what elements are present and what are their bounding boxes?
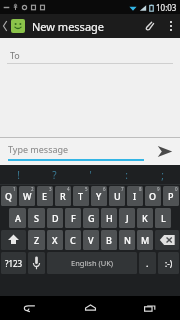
button[interactable]: U — [109, 186, 125, 206]
button[interactable]: ?123 — [1, 252, 26, 274]
staticText: M — [141, 234, 150, 246]
button[interactable]: C — [65, 230, 81, 250]
button[interactable]: Voice input — [28, 252, 45, 274]
button[interactable]: Home — [60, 296, 120, 320]
button[interactable]: K — [137, 208, 153, 228]
button[interactable]: . — [139, 252, 156, 274]
button[interactable]: Type message — [8, 143, 144, 161]
staticText: V — [88, 234, 94, 246]
button[interactable]: S — [28, 208, 45, 228]
button[interactable]: R — [55, 186, 71, 206]
button[interactable]: Attach — [136, 14, 162, 38]
staticText: 1 — [13, 186, 16, 192]
staticText: N — [124, 234, 131, 246]
staticText: ! — [17, 168, 20, 182]
button[interactable]: B — [101, 230, 117, 250]
staticText: Q — [5, 190, 13, 202]
staticText: R — [60, 190, 66, 202]
staticText: B — [106, 234, 112, 246]
staticText: K — [142, 212, 148, 224]
staticText: I — [133, 190, 137, 202]
button[interactable]: P — [163, 186, 179, 206]
staticText: W — [23, 190, 32, 202]
staticText: 4 — [67, 186, 70, 192]
staticText: ? — [52, 168, 57, 182]
staticText: D — [52, 212, 59, 224]
staticText: 5 — [85, 186, 88, 192]
staticText: 0 — [175, 186, 178, 192]
button[interactable]: Send — [150, 138, 180, 165]
button[interactable]: G — [83, 208, 99, 228]
button[interactable]: J — [119, 208, 135, 228]
staticText: U — [114, 190, 121, 202]
staticText: English (UK) — [71, 258, 114, 268]
staticText: : — [125, 168, 128, 182]
staticText: T — [78, 190, 84, 202]
button[interactable]: D — [47, 208, 63, 228]
staticText: J — [126, 212, 129, 224]
button[interactable]: T — [73, 186, 89, 206]
staticText: P — [168, 190, 174, 202]
button[interactable]: Shift — [1, 230, 26, 250]
button[interactable]: E — [37, 186, 53, 206]
staticText: Y — [96, 190, 102, 202]
button[interactable]: L — [155, 208, 171, 228]
button[interactable]: V — [83, 230, 99, 250]
button[interactable]: More options — [162, 14, 180, 38]
button[interactable]: X — [47, 230, 63, 250]
staticText: 8 — [139, 186, 142, 192]
button[interactable]: W — [19, 186, 35, 206]
button[interactable]: M — [137, 230, 153, 250]
staticText: G — [88, 212, 95, 224]
button[interactable]: Delete — [155, 230, 179, 250]
staticText: 7 — [121, 186, 124, 192]
staticText: Z — [34, 234, 40, 246]
staticText: H — [106, 212, 113, 224]
button[interactable]: English (UK) — [47, 252, 137, 274]
staticText: ' — [89, 168, 92, 182]
button[interactable]: Back — [0, 296, 60, 320]
button[interactable]: I — [127, 186, 143, 206]
button[interactable]: To — [7, 46, 173, 63]
staticText: E — [42, 190, 48, 202]
staticText: O — [149, 190, 157, 202]
staticText: X — [52, 234, 58, 246]
button[interactable]: A — [9, 208, 26, 228]
staticText: 2 — [31, 186, 34, 192]
staticText: 9 — [157, 186, 160, 192]
button[interactable]: N — [119, 230, 135, 250]
button[interactable]: Q — [1, 186, 17, 206]
staticText: A — [15, 212, 21, 224]
button[interactable]: :-) — [158, 252, 179, 274]
staticText: New message — [32, 19, 105, 34]
staticText: Type message — [8, 143, 69, 155]
staticText: 3 — [49, 186, 52, 192]
button[interactable]: ? — [36, 165, 72, 184]
button[interactable]: ! — [0, 165, 36, 184]
staticText: :-) — [165, 258, 173, 269]
button[interactable]: Recent apps — [120, 296, 180, 320]
button[interactable]: H — [101, 208, 117, 228]
button[interactable]: ; — [144, 165, 180, 184]
button[interactable]: : — [108, 165, 144, 184]
button[interactable]: ' — [72, 165, 108, 184]
staticText: 10:03 — [156, 2, 177, 13]
staticText: L — [161, 212, 166, 224]
staticText: S — [34, 212, 39, 224]
button[interactable]: F — [65, 208, 81, 228]
staticText: F — [71, 212, 76, 224]
staticText: . — [146, 257, 149, 269]
staticText: ; — [161, 168, 164, 182]
staticText: To — [10, 49, 20, 61]
button[interactable]: Y — [91, 186, 107, 206]
staticText: 6 — [103, 186, 106, 192]
staticText: ?123 — [5, 258, 23, 269]
button[interactable]: Z — [28, 230, 45, 250]
button[interactable]: O — [145, 186, 161, 206]
staticText: C — [70, 234, 76, 246]
button[interactable] — [0, 14, 28, 38]
